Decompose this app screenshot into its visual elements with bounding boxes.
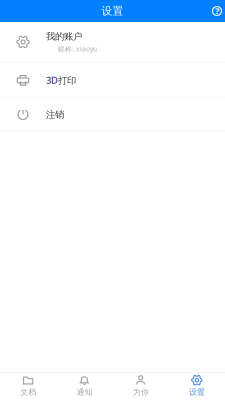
staticText: 设置: [189, 387, 205, 397]
button[interactable]: 设置: [169, 371, 225, 400]
button[interactable]: 注销: [0, 98, 225, 131]
staticText: 文档: [20, 387, 36, 397]
staticText: 设置: [101, 4, 123, 17]
button[interactable]: 文档: [0, 371, 56, 400]
staticText: ?: [215, 4, 219, 17]
staticText: 为你: [133, 387, 149, 397]
staticText: 3D打印: [46, 74, 76, 86]
button[interactable]: 我的账户: [0, 22, 225, 63]
staticText: 通知: [76, 387, 92, 397]
button[interactable]: 3D打印: [0, 63, 225, 98]
staticText: 注销: [46, 109, 64, 120]
staticText: 我的账户: [46, 31, 82, 42]
button[interactable]: 为你: [112, 371, 169, 400]
staticText: 昵称: xiaoyu: [58, 45, 97, 53]
button[interactable]: Help: [209, 2, 225, 20]
button[interactable]: 通知: [56, 371, 112, 400]
